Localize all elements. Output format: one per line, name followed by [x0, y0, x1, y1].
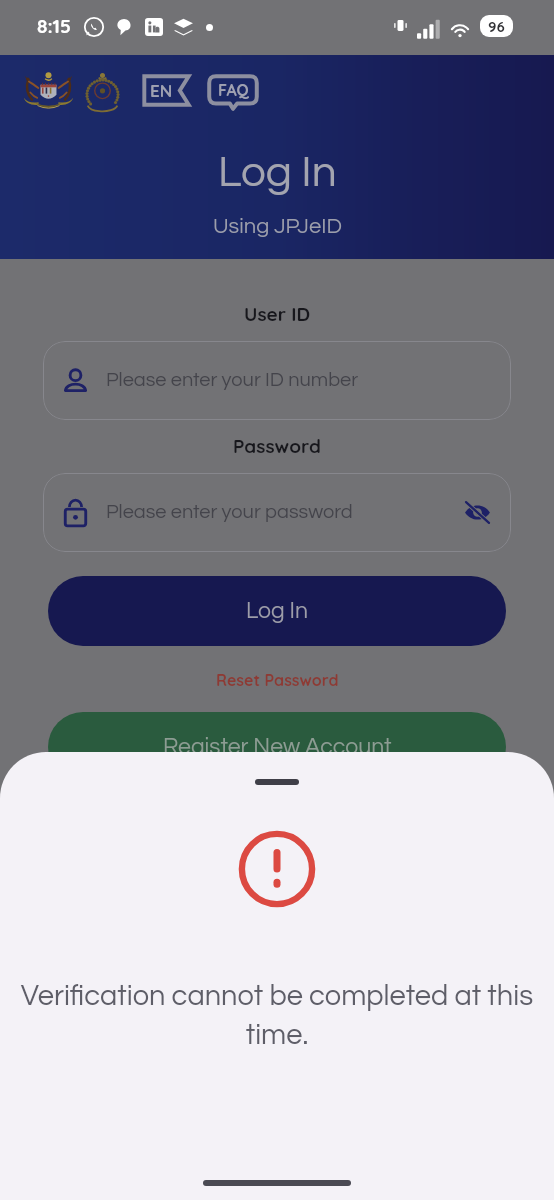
staticText: Log In	[246, 599, 309, 623]
other: JPJ logo	[84, 72, 121, 113]
button[interactable]: Please enter your ID number	[43, 341, 511, 420]
staticText: User ID	[244, 302, 311, 326]
button[interactable]: Change language	[142, 74, 191, 107]
button[interactable]: Register New Account	[48, 712, 506, 782]
staticText: Log In	[218, 150, 337, 195]
staticText: Using JPJeID	[213, 215, 342, 238]
staticText: Register New Account	[163, 735, 392, 759]
staticText: Please enter your password	[106, 502, 353, 523]
button[interactable]: Reset Password	[212, 666, 343, 694]
staticText: FAQ	[218, 80, 249, 100]
staticText: Please enter your ID number	[106, 370, 359, 391]
staticText: Verification cannot be completed at this…	[14, 981, 540, 1050]
staticText: EN	[150, 80, 173, 101]
button[interactable]: Please enter your password	[43, 473, 511, 552]
button[interactable]: FAQ	[207, 74, 259, 111]
staticText: 96	[488, 17, 505, 36]
button[interactable]: Log In	[48, 576, 506, 646]
staticText: Password	[233, 434, 321, 458]
other: Coat of arms	[21, 70, 76, 115]
staticText: 8:15	[37, 14, 71, 38]
button[interactable]: Show password	[464, 499, 491, 526]
